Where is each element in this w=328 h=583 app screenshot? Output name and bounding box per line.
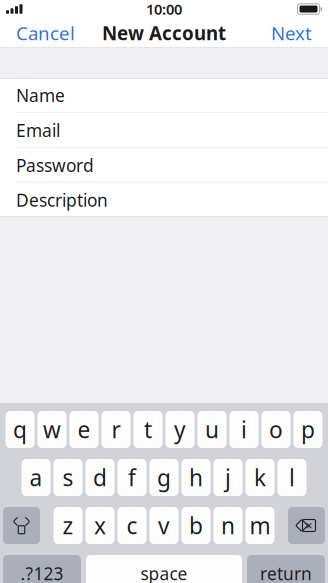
staticText: .?123 (20, 562, 63, 583)
button[interactable]: x (85, 507, 114, 544)
staticText: Email (16, 119, 60, 142)
button[interactable]: d (85, 459, 114, 496)
button[interactable]: o (261, 411, 290, 448)
staticText: l (289, 462, 295, 492)
button[interactable]: .?123 (3, 555, 81, 583)
button[interactable]: n (213, 507, 242, 544)
staticText: g (157, 462, 171, 492)
staticText: w (43, 414, 61, 444)
staticText: × (305, 517, 312, 533)
staticText: i (241, 414, 247, 444)
staticText: o (269, 414, 283, 444)
staticText: y (174, 414, 186, 444)
button[interactable]: Shift (3, 507, 40, 544)
button[interactable]: e (69, 411, 98, 448)
staticText: Name (16, 84, 65, 107)
button[interactable]: b (181, 507, 210, 544)
staticText: return (260, 562, 312, 583)
staticText: t (144, 414, 152, 444)
staticText: m (249, 510, 270, 540)
button[interactable]: p (293, 411, 322, 448)
staticText: 10:00 (146, 0, 182, 19)
button[interactable]: i (229, 411, 258, 448)
staticText: Password (16, 154, 94, 177)
button[interactable]: k (245, 459, 274, 496)
button[interactable]: Next (265, 15, 318, 51)
button[interactable]: return (247, 555, 325, 583)
staticText: k (254, 462, 266, 492)
staticText: s (62, 462, 73, 492)
staticText: z (62, 510, 73, 540)
staticText: d (93, 462, 107, 492)
button[interactable]: w (37, 411, 66, 448)
staticText: Next (271, 21, 312, 45)
staticText: q (13, 414, 27, 444)
button[interactable]: Password (0, 148, 328, 183)
staticText: a (29, 462, 42, 492)
staticText: u (205, 414, 219, 444)
button[interactable]: space (86, 555, 242, 583)
button[interactable]: Delete (288, 507, 325, 544)
button[interactable]: a (21, 459, 50, 496)
button[interactable]: q (5, 411, 34, 448)
button[interactable]: j (213, 459, 242, 496)
staticText: r (111, 414, 120, 444)
staticText: New Account (102, 21, 226, 45)
button[interactable]: m (245, 507, 274, 544)
button[interactable]: t (133, 411, 162, 448)
staticText: h (189, 462, 203, 492)
button[interactable]: Name (0, 78, 328, 113)
button[interactable]: g (149, 459, 178, 496)
staticText: p (301, 414, 315, 444)
button[interactable]: r (101, 411, 130, 448)
button[interactable]: c (117, 507, 146, 544)
staticText: n (221, 510, 235, 540)
button[interactable]: h (181, 459, 210, 496)
button[interactable]: Email (0, 113, 328, 148)
staticText: b (189, 510, 203, 540)
staticText: space (140, 562, 187, 583)
staticText: c (126, 510, 137, 540)
button[interactable]: z (53, 507, 82, 544)
button[interactable]: l (277, 459, 306, 496)
button[interactable]: f (117, 459, 146, 496)
staticText: f (128, 462, 136, 492)
button[interactable]: Cancel (10, 15, 81, 51)
button[interactable]: y (165, 411, 194, 448)
button[interactable]: s (53, 459, 82, 496)
button[interactable]: u (197, 411, 226, 448)
button[interactable]: Description (0, 183, 328, 217)
button[interactable]: v (149, 507, 178, 544)
staticText: Cancel (16, 21, 75, 45)
staticText: x (94, 510, 106, 540)
staticText: Description (16, 188, 108, 211)
staticText: v (158, 510, 170, 540)
staticText: j (225, 462, 231, 492)
staticText: e (77, 414, 90, 444)
